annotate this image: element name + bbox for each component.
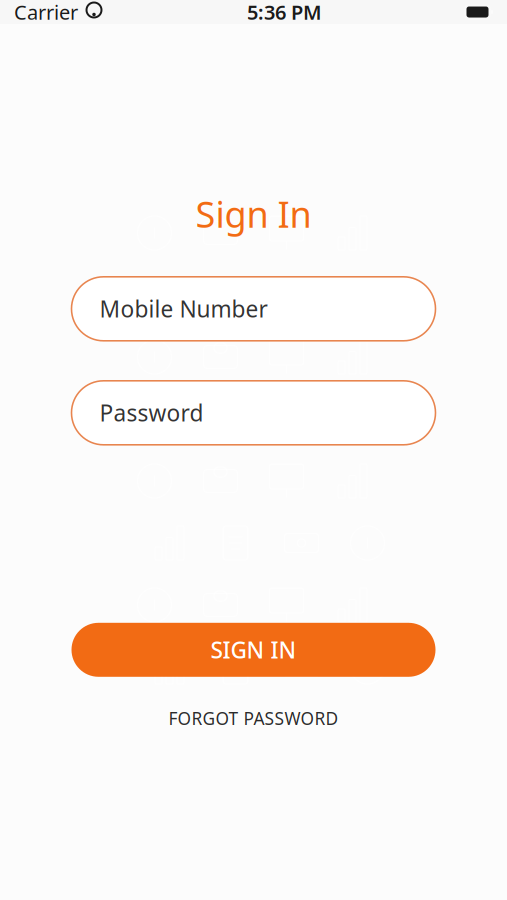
staticText: Carrier (14, 0, 78, 25)
staticText: Password (99, 398, 203, 428)
button[interactable]: Password (71, 381, 435, 445)
staticText: 5:36 PM (247, 0, 322, 25)
button[interactable]: SIGN IN (71, 623, 435, 677)
staticText: Sign In (195, 190, 311, 238)
staticText: FORGOT PASSWORD (168, 707, 338, 730)
button[interactable]: Mobile Number (71, 277, 435, 341)
button[interactable]: FORGOT PASSWORD (154, 698, 352, 739)
staticText: Mobile Number (99, 294, 267, 324)
staticText: SIGN IN (210, 635, 296, 665)
